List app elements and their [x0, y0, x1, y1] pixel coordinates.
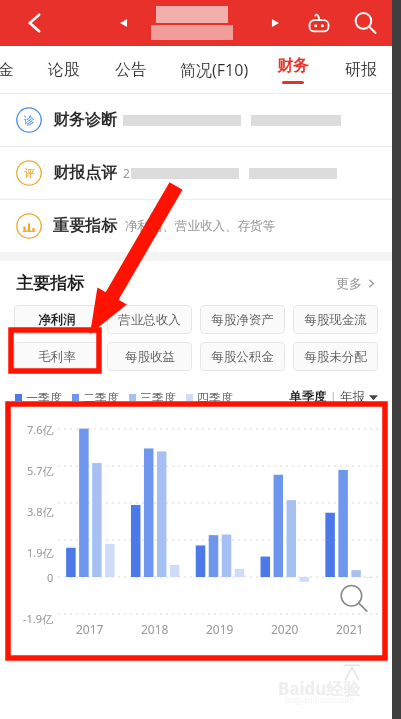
button[interactable]: 更多: [336, 275, 376, 291]
staticText: 简况(F10): [180, 59, 249, 81]
staticText: 一季度: [26, 390, 62, 405]
staticText: 每股净资产: [211, 312, 274, 328]
button[interactable]: 每股收益: [107, 342, 192, 371]
staticText: jingyan.baidu.com: [285, 694, 355, 705]
button[interactable]: 公告: [115, 46, 147, 93]
staticText: 每股现金流: [304, 312, 367, 328]
staticText: 毛利率: [38, 349, 76, 365]
staticText: 每股公积金: [211, 349, 274, 365]
button[interactable]: Search: [352, 10, 378, 36]
staticText: 每股未分配: [304, 349, 367, 365]
button[interactable]: Previous: [117, 16, 131, 30]
button[interactable]: Assistant: [305, 9, 333, 37]
staticText: 更多: [336, 275, 362, 291]
staticText: 1.9亿: [27, 545, 54, 560]
button[interactable]: 评: [16, 147, 376, 199]
staticText: 3.8亿: [27, 504, 54, 519]
staticText: 年报: [340, 389, 365, 405]
staticText: 营业总收入: [118, 312, 181, 328]
staticText: |: [327, 389, 340, 405]
staticText: 四季度: [197, 390, 233, 405]
staticText: -1.9亿: [23, 611, 54, 626]
button[interactable]: 每股现金流: [293, 305, 378, 334]
staticText: 财务: [277, 56, 309, 76]
button[interactable]: 简况(F10): [180, 46, 249, 93]
staticText: 二季度: [83, 390, 119, 405]
staticText: 三季度: [140, 390, 176, 405]
staticText: 2020: [271, 621, 299, 637]
staticText: 财务诊断: [53, 110, 117, 130]
staticText: 2017: [76, 621, 104, 637]
button[interactable]: 重要指标: [16, 200, 376, 252]
staticText: 财报点评: [53, 163, 117, 183]
button[interactable]: 每股公积金: [200, 342, 285, 371]
button[interactable]: 研报: [345, 46, 377, 93]
staticText: 主要指标: [16, 273, 84, 294]
button[interactable]: 每股净资产: [200, 305, 285, 334]
staticText: 2019: [206, 621, 234, 637]
button[interactable]: Zoom chart: [338, 583, 370, 615]
button[interactable]: 净利润: [14, 305, 99, 334]
staticText: 5.7亿: [27, 463, 54, 478]
button[interactable]: 财务: [277, 46, 309, 93]
button[interactable]: 营业总收入: [107, 305, 192, 334]
button[interactable]: 单季度: [289, 389, 378, 405]
staticText: 7.6亿: [27, 422, 54, 437]
button[interactable]: 论股: [48, 46, 80, 93]
staticText: 每股收益: [125, 349, 175, 365]
staticText: 诊: [24, 113, 35, 127]
staticText: 重要指标: [53, 216, 117, 236]
staticText: 净利润、营业收入、存货等: [125, 218, 275, 234]
staticText: 单季度: [289, 389, 327, 405]
button[interactable]: 每股未分配: [293, 342, 378, 371]
staticText: 论股: [48, 60, 80, 80]
button[interactable]: Next: [268, 16, 282, 30]
staticText: 0: [47, 570, 54, 585]
staticText: 净利润: [38, 312, 76, 328]
staticText: 研报: [345, 60, 377, 80]
button[interactable]: 毛利率: [14, 342, 99, 371]
staticText: Baidu经验: [278, 677, 361, 700]
button[interactable]: 金: [0, 46, 14, 93]
button[interactable]: Back: [22, 10, 48, 36]
button[interactable]: 诊: [16, 94, 376, 146]
staticText: 金: [0, 60, 14, 80]
staticText: 评: [24, 166, 35, 180]
staticText: 2021: [336, 621, 364, 637]
staticText: 2018: [141, 621, 169, 637]
staticText: 2: [123, 165, 130, 181]
staticText: 公告: [115, 60, 147, 80]
